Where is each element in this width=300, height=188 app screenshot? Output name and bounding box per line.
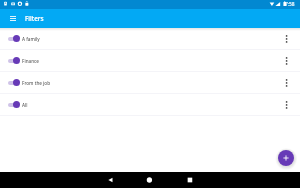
button[interactable]: Toggle All (6, 99, 20, 110)
button[interactable]: Toggle Finance (0, 50, 300, 72)
button[interactable]: More options for A family (281, 30, 291, 48)
staticText: Filters (25, 14, 44, 23)
button[interactable]: More options for All (281, 96, 291, 114)
button[interactable]: Recent apps (174, 172, 206, 188)
button[interactable]: Toggle From the job (0, 72, 300, 94)
button[interactable]: Navigation menu (6, 12, 19, 25)
button[interactable]: Toggle A family (0, 28, 300, 50)
staticText: 7:58 (285, 1, 295, 8)
button[interactable]: Add filter (278, 150, 294, 166)
staticText: Finance (22, 58, 39, 64)
button[interactable]: Home (133, 172, 165, 188)
button[interactable]: Toggle From the job (6, 77, 20, 88)
staticText: A family (22, 36, 40, 42)
staticText: All (22, 102, 28, 108)
button[interactable]: Toggle All (0, 94, 300, 116)
button[interactable]: Back (94, 172, 126, 188)
button[interactable]: More options for Finance (281, 52, 291, 70)
button[interactable]: Toggle A family (6, 33, 20, 44)
staticText: From the job (22, 80, 50, 86)
button[interactable]: More options for From the job (281, 74, 291, 92)
button[interactable]: Toggle Finance (6, 55, 20, 66)
